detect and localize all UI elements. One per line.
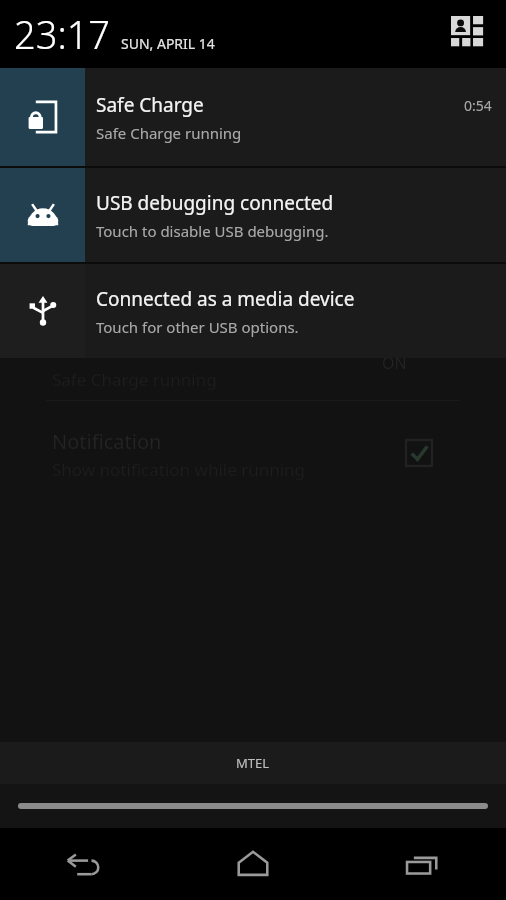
- staticText: 23:17: [14, 8, 111, 60]
- staticText: Connected as a media device: [96, 286, 355, 312]
- staticText: MTEL: [236, 754, 270, 772]
- button[interactable]: Home: [168, 828, 337, 900]
- button[interactable]: USB debugging connected: [0, 168, 506, 262]
- staticText: Enable Safe Charge: [52, 138, 225, 164]
- button[interactable]: Back: [0, 828, 168, 900]
- button[interactable]: Safe Charge: [0, 68, 506, 166]
- staticText: Touch to disable USB debugging.: [96, 221, 329, 241]
- staticText: SUN, APRIL 14: [121, 34, 215, 53]
- staticText: Safe Charge: [96, 92, 204, 118]
- button[interactable]: Recents: [337, 828, 506, 900]
- staticText: Safe Charge running: [96, 123, 242, 143]
- staticText: Notification: [52, 428, 162, 455]
- staticText: USB debugging connected: [96, 190, 334, 216]
- button[interactable]: Connected as a media device: [0, 264, 506, 358]
- staticText: ON: [382, 352, 407, 374]
- button[interactable]: Quick settings: [448, 13, 490, 55]
- staticText: Touch for other USB options.: [96, 317, 299, 337]
- staticText: 0:54: [464, 96, 492, 115]
